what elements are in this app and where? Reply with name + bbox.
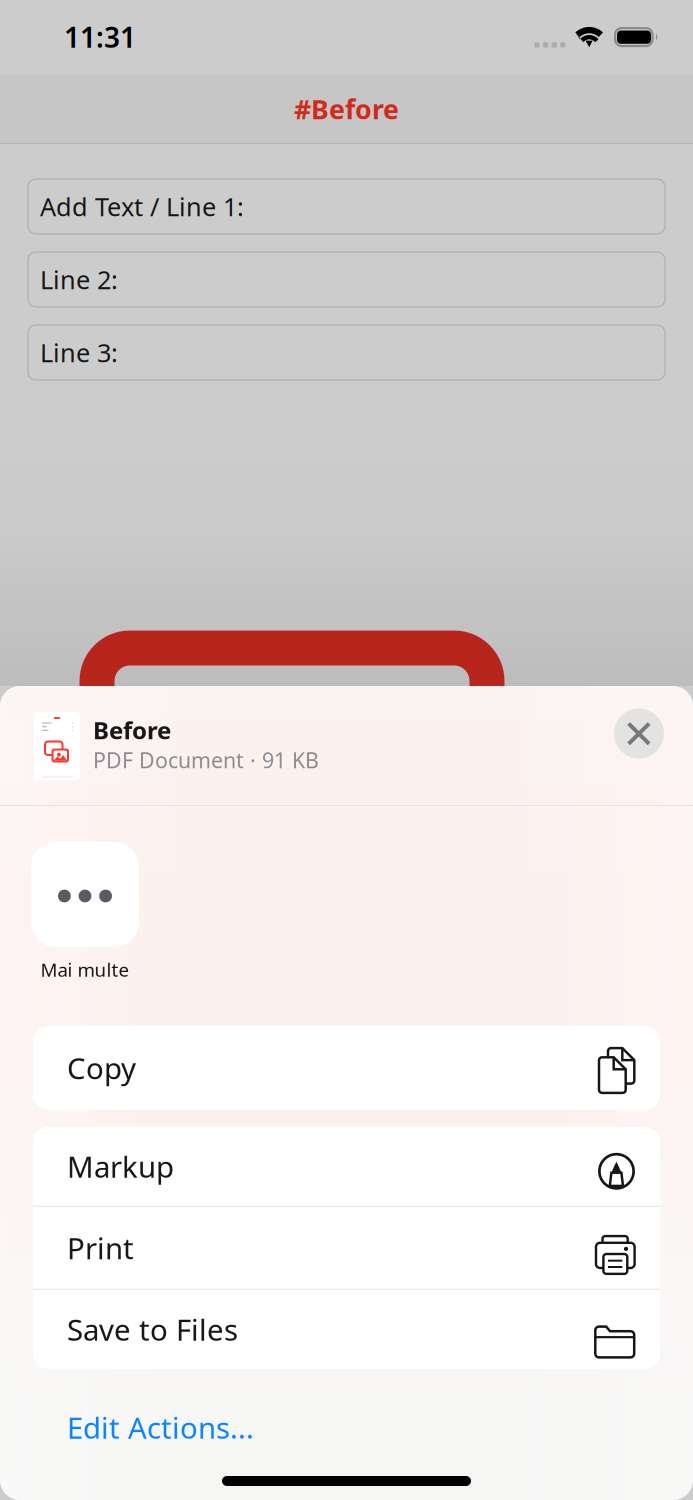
staticText: Edit Actions... <box>67 1408 254 1447</box>
button[interactable]: Markup <box>33 1127 660 1206</box>
staticText: PDF Document · 91 KB <box>93 746 319 774</box>
staticText: Copy <box>67 1048 136 1087</box>
staticText: Markup <box>67 1147 174 1186</box>
button[interactable]: Save to Files <box>33 1290 660 1369</box>
button[interactable]: Copy <box>33 1026 660 1110</box>
staticText: Add Text / Line 1: <box>40 190 244 223</box>
staticText: Line 3: <box>40 336 118 369</box>
button[interactable]: Close <box>614 708 664 758</box>
staticText: Save to Files <box>67 1310 238 1349</box>
button[interactable]: Print <box>33 1207 660 1289</box>
staticText: Line 2: <box>40 263 118 296</box>
button[interactable]: Edit Actions... <box>0 1398 274 1457</box>
button[interactable]: Mai multe <box>31 842 139 982</box>
staticText: 11:31 <box>64 18 136 56</box>
staticText: Before <box>93 714 171 746</box>
staticText: #Before <box>294 91 399 127</box>
staticText: Mai multe <box>40 957 129 982</box>
staticText: Print <box>67 1228 134 1267</box>
